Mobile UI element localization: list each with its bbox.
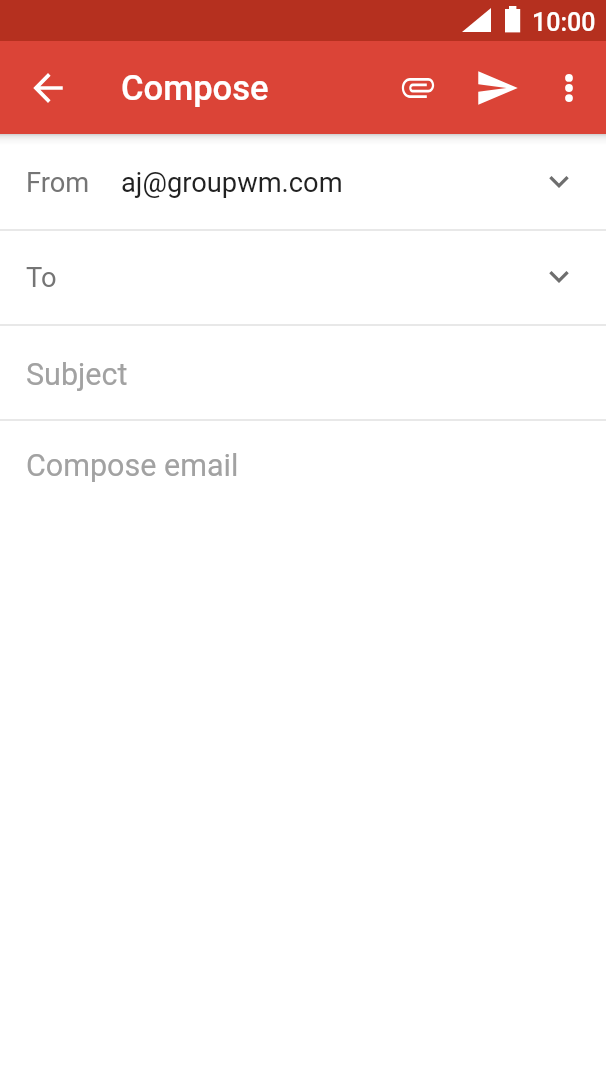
staticText: Subject	[26, 357, 128, 393]
button[interactable]: Back	[0, 41, 95, 134]
button[interactable]: More options	[539, 41, 599, 134]
staticText: Compose email	[26, 448, 239, 484]
button[interactable]: Subject	[0, 324, 606, 419]
button[interactable]: To	[0, 229, 606, 324]
button[interactable]: Send	[457, 41, 539, 134]
staticText: aj@groupwm.com	[121, 167, 343, 199]
staticText: 10:00	[532, 8, 596, 37]
button[interactable]: From	[0, 134, 606, 229]
staticText: Compose	[121, 68, 269, 108]
button[interactable]: Compose email	[0, 419, 606, 514]
staticText: From	[26, 167, 90, 199]
staticText: To	[26, 262, 57, 294]
button[interactable]: Attach file	[382, 41, 454, 134]
